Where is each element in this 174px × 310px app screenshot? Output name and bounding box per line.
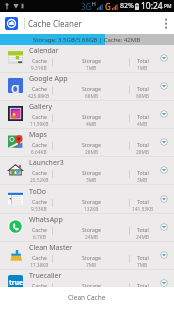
button[interactable]: More options [158,12,174,34]
staticText: 24MB [85,234,98,241]
button[interactable]: Expand details [160,251,168,259]
staticText: PM [164,3,172,10]
staticText: Cache [32,254,47,261]
staticText: 7MB [137,262,148,269]
staticText: Launcher3 [29,158,64,168]
staticText: Storage [82,226,101,233]
staticText: Truecaller [29,271,62,281]
staticText: Google App [29,74,68,84]
button[interactable]: Expand details [160,138,168,146]
staticText: 20.52KB [30,177,49,184]
staticText: Cache [32,169,47,176]
staticText: 132KB [84,206,99,213]
staticText: 28MB [136,149,149,156]
staticText: 10:24 [141,0,163,12]
button[interactable]: Clean Cache [0,287,174,310]
staticText: 1MB [86,65,97,72]
staticText: Storage [82,169,101,176]
button[interactable]: Calendar [0,45,174,73]
staticText: Cache [32,198,47,205]
staticText: Total [137,141,149,148]
staticText: Storage: 3.5GB/5.68GB | Cache: 42MB [33,36,141,44]
staticText: 4MB [137,121,148,128]
staticText: 28MB [85,149,98,156]
staticText: Total [137,169,149,176]
staticText: 68MB [136,93,149,100]
button[interactable]: Expand details [160,110,168,118]
staticText: 82% [120,1,134,11]
staticText: 7MB [86,262,97,269]
staticText: Calendar [29,46,59,56]
button[interactable]: Launcher3 [0,157,174,185]
button[interactable]: Maps [0,129,174,157]
staticText: 6.64KB [31,149,47,156]
button[interactable]: ToDo [0,186,174,214]
staticText: Total [137,282,149,287]
staticText: 9.53KB [31,206,47,213]
staticText: Maps [29,130,47,140]
staticText: Cache [32,226,47,233]
staticText: Clean Master [29,243,73,253]
staticText: ToDo [29,187,46,197]
button[interactable]: Expand details [160,195,168,203]
staticText: 425.88KB [28,93,50,100]
staticText: Cache [32,141,47,148]
staticText: Total [137,57,149,64]
staticText: 3MB [137,177,148,184]
staticText: Clean Cache [68,293,106,302]
staticText: WhatsApp [29,215,63,225]
staticText: Cache Cleaner [28,18,82,29]
button[interactable]: Expand details [160,82,168,90]
button[interactable]: Expand details [160,279,168,287]
staticText: Storage [82,113,101,120]
button[interactable]: Expand details [160,54,168,62]
staticText: Cache [32,57,47,64]
staticText: H [92,1,96,8]
staticText: Total [137,85,149,92]
staticText: Storage [82,198,101,205]
staticText: Total [137,198,149,205]
staticText: Gallery [29,102,53,112]
staticText: Total [137,113,149,120]
staticText: Storage [82,141,101,148]
staticText: 4MB [86,121,97,128]
staticText: Storage [82,85,101,92]
staticText: Storage [82,282,101,287]
staticText: Total [137,254,149,261]
staticText: Cache [32,85,47,92]
button[interactable]: Cache Cleaner app icon [5,17,18,30]
staticText: 6.7KB [33,234,46,241]
staticText: 1MB [137,65,148,72]
button[interactable]: Expand details [160,166,168,174]
staticText: 141.53KB [132,206,154,213]
button[interactable]: Expand details [160,223,168,231]
staticText: Cache [32,282,47,287]
staticText: 24MB [136,234,149,241]
staticText: g [11,78,20,93]
button[interactable]: Clean Master [0,242,174,270]
staticText: G [105,1,111,12]
staticText: Storage [82,254,101,261]
staticText: Total [137,226,149,233]
staticText: true [9,278,23,287]
staticText: 17.38KB [30,262,49,269]
staticText: Storage [82,57,101,64]
staticText: 11.59KB [30,121,49,128]
button[interactable]: true [0,270,174,287]
staticText: 3MB [86,177,97,184]
staticText: 9.31KB [31,65,47,72]
button[interactable]: Gallery [0,101,174,129]
staticText: 3G [81,1,92,12]
staticText: Cache [32,113,47,120]
button[interactable]: g [0,73,174,101]
button[interactable]: WhatsApp [0,214,174,242]
staticText: 68MB [85,93,98,100]
